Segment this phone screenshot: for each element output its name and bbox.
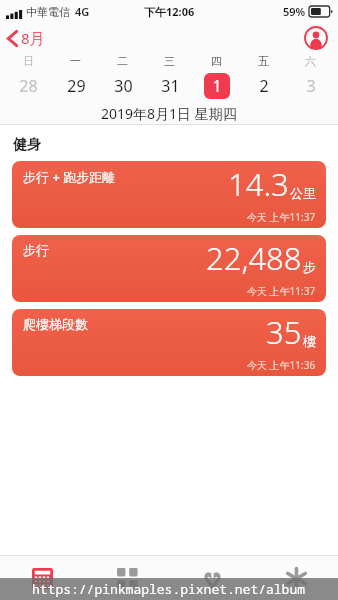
button[interactable]: Sources bbox=[170, 556, 255, 600]
staticText: 樓 bbox=[303, 333, 316, 349]
button[interactable]: 1 bbox=[204, 73, 230, 99]
button[interactable]: 8月 bbox=[0, 24, 53, 52]
staticText: 28 bbox=[19, 75, 38, 97]
button[interactable]: Health Data bbox=[85, 556, 170, 600]
button[interactable]: 爬樓梯段數 bbox=[12, 309, 326, 376]
staticText: 下午12:06 bbox=[144, 4, 195, 19]
button[interactable]: Summary bbox=[0, 556, 85, 600]
staticText: 步行 bbox=[23, 242, 49, 258]
staticText: 3 bbox=[306, 75, 316, 97]
staticText: 公里 bbox=[290, 185, 316, 201]
button[interactable]: 31 bbox=[157, 73, 183, 99]
staticText: 健身 bbox=[13, 136, 41, 154]
staticText: 四 bbox=[211, 54, 222, 68]
button[interactable]: 步行 bbox=[12, 235, 326, 302]
button[interactable]: 30 bbox=[110, 73, 136, 99]
staticText: 1 bbox=[212, 75, 222, 97]
button[interactable]: Profile bbox=[304, 26, 328, 50]
staticText: 22,488 bbox=[206, 237, 302, 279]
staticText: 2 bbox=[259, 75, 269, 97]
staticText: 29 bbox=[67, 75, 86, 97]
staticText: 三 bbox=[164, 54, 175, 68]
staticText: 31 bbox=[161, 75, 180, 97]
staticText: 二 bbox=[117, 54, 128, 68]
staticText: https://pinkmaples.pixnet.net/album bbox=[32, 580, 306, 598]
staticText: 一 bbox=[70, 54, 81, 68]
staticText: 8月 bbox=[21, 28, 45, 48]
staticText: 30 bbox=[114, 75, 133, 97]
staticText: 59% bbox=[283, 4, 306, 19]
button[interactable]: 步行 + 跑步距離 bbox=[12, 161, 326, 228]
staticText: 步 bbox=[303, 259, 316, 275]
staticText: 4G bbox=[75, 4, 90, 19]
staticText: 五 bbox=[258, 54, 269, 68]
staticText: 六 bbox=[305, 54, 316, 68]
button[interactable]: Medical ID bbox=[255, 556, 338, 600]
button[interactable]: 28 bbox=[15, 73, 41, 99]
staticText: 步行 + 跑步距離 bbox=[23, 168, 116, 186]
staticText: 14.3 bbox=[228, 163, 289, 205]
staticText: 35 bbox=[266, 311, 302, 353]
staticText: 2019年8月1日 星期四 bbox=[101, 104, 237, 123]
staticText: 今天 上午11:37 bbox=[247, 210, 316, 224]
staticText: 日 bbox=[23, 54, 34, 68]
button[interactable]: 3 bbox=[298, 73, 324, 99]
staticText: 中華電信 bbox=[26, 5, 70, 19]
staticText: 今天 上午11:36 bbox=[247, 358, 316, 372]
button[interactable]: 2 bbox=[251, 73, 277, 99]
button[interactable]: 29 bbox=[63, 73, 89, 99]
staticText: 今天 上午11:37 bbox=[247, 284, 316, 298]
staticText: 爬樓梯段數 bbox=[23, 316, 88, 332]
